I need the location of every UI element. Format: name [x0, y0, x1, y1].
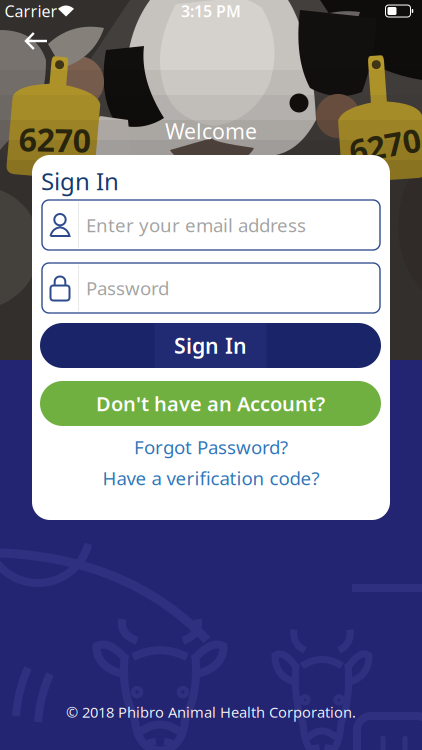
- staticText: Enter your email address: [86, 213, 306, 237]
- staticText: Welcome: [165, 117, 257, 145]
- button[interactable]: [15, 23, 57, 59]
- staticText: Forgot Password?: [134, 435, 288, 459]
- staticText: Sign In: [41, 165, 119, 197]
- staticText: Sign In: [174, 331, 247, 360]
- button[interactable]: Enter your email address: [42, 200, 380, 250]
- staticText: Have a verification code?: [102, 466, 319, 490]
- button[interactable]: Sign In: [40, 323, 381, 368]
- staticText: Carrier: [4, 0, 57, 22]
- staticText: 3:15 PM: [181, 0, 241, 22]
- staticText: Password: [86, 276, 169, 300]
- button[interactable]: Password: [42, 263, 380, 313]
- staticText: © 2018 Phibro Animal Health Corporation.: [66, 702, 356, 722]
- button[interactable]: Have a verification code?: [98, 462, 323, 494]
- button[interactable]: Forgot Password?: [130, 431, 292, 463]
- button[interactable]: Don't have an Account?: [40, 381, 381, 426]
- staticText: 6270: [344, 124, 416, 167]
- staticText: 6270: [19, 118, 91, 161]
- staticText: Don't have an Account?: [96, 390, 325, 417]
